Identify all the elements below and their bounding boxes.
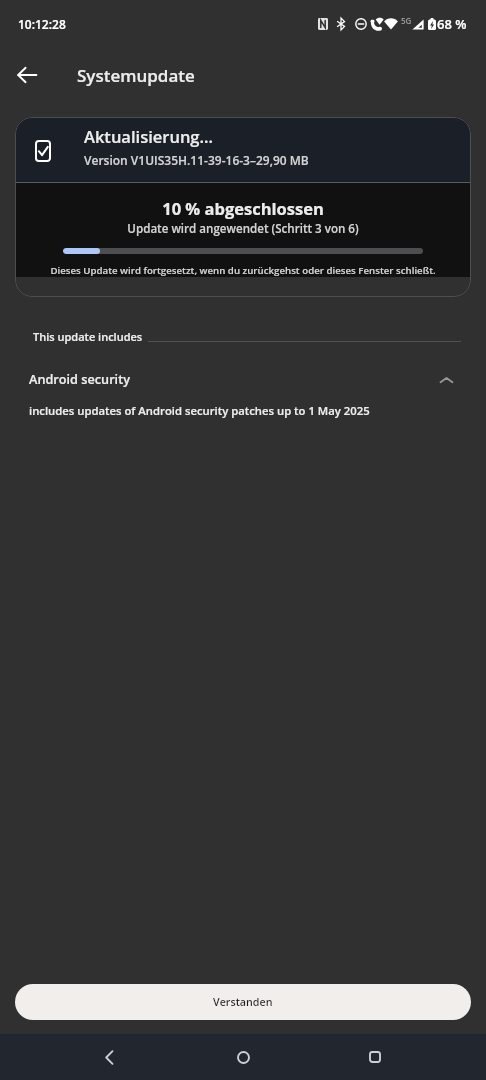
- staticText: 5G: [401, 15, 412, 26]
- button[interactable]: Back: [76, 1034, 142, 1080]
- button[interactable]: Recent apps: [342, 1034, 408, 1080]
- button[interactable]: Home: [210, 1034, 276, 1080]
- staticText: 68 %: [437, 15, 467, 33]
- button[interactable]: Back: [9, 57, 45, 93]
- staticText: Version V1UIS35H.11-39-16-3–29,90 MB: [84, 152, 309, 168]
- staticText: includes updates of Android security pat…: [29, 403, 370, 418]
- staticText: Aktualisierung…: [84, 125, 213, 147]
- staticText: Dieses Update wird fortgesetzt, wenn du …: [25, 264, 461, 277]
- staticText: Android security: [29, 370, 130, 387]
- staticText: This update includes: [33, 329, 143, 344]
- staticText: 10 % abgeschlossen: [15, 197, 471, 219]
- button[interactable]: Android security: [0, 364, 486, 392]
- staticText: 10:12:28: [18, 16, 66, 32]
- staticText: Verstanden: [213, 995, 273, 1010]
- staticText: Update wird angewendet (Schritt 3 von 6): [15, 221, 471, 237]
- staticText: Systemupdate: [77, 64, 195, 87]
- button[interactable]: Verstanden: [15, 984, 471, 1020]
